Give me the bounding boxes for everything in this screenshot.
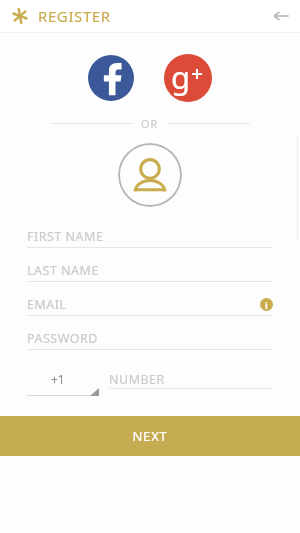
button[interactable]: NUMBER — [109, 370, 273, 389]
button[interactable]: PASSWORD — [27, 327, 273, 361]
staticText: NEXT — [132, 427, 168, 445]
button[interactable]: Sign up with Google Plus — [164, 54, 212, 102]
button[interactable]: +1 — [27, 370, 99, 396]
staticText: i — [265, 299, 268, 311]
button[interactable]: FIRST NAME — [27, 225, 273, 259]
staticText: PASSWORD — [27, 330, 98, 347]
button[interactable]: Sign up with Facebook — [88, 55, 134, 101]
staticText: OR — [141, 116, 159, 131]
staticText: +1 — [51, 371, 65, 387]
button[interactable]: NEXT — [0, 416, 300, 456]
staticText: EMAIL — [27, 296, 67, 313]
button[interactable]: Add profile photo — [118, 143, 182, 207]
staticText: g — [171, 56, 191, 98]
button[interactable]: EMAIL — [27, 293, 273, 327]
staticText: FIRST NAME — [27, 228, 104, 245]
button[interactable]: Back — [268, 3, 294, 29]
other: Email info — [260, 298, 273, 311]
button[interactable]: Menu — [8, 4, 32, 28]
staticText: LAST NAME — [27, 262, 99, 279]
staticText: NUMBER — [109, 371, 165, 388]
staticText: REGISTER — [38, 6, 111, 26]
button[interactable]: LAST NAME — [27, 259, 273, 293]
